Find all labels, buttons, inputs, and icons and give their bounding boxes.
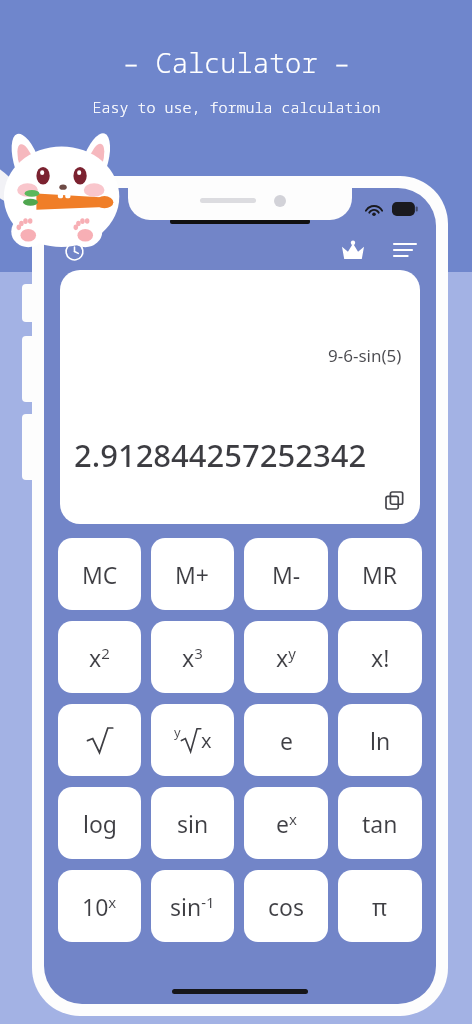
button[interactable]: MR <box>338 538 422 610</box>
button[interactable]: ln <box>338 704 422 776</box>
staticText: x3 <box>182 642 203 673</box>
button[interactable]: MC <box>58 538 141 610</box>
button[interactable]: Copy result <box>380 486 408 514</box>
button[interactable] <box>58 704 141 776</box>
staticText: π <box>372 891 388 922</box>
button[interactable]: History <box>58 234 90 266</box>
staticText: x <box>201 727 212 754</box>
staticText: 9-6-sin(5) <box>328 344 402 367</box>
button[interactable]: x! <box>338 621 422 693</box>
staticText: sin-1 <box>170 891 215 922</box>
button[interactable]: x3 <box>151 621 234 693</box>
button[interactable]: sin-1 <box>151 870 234 942</box>
button[interactable]: π <box>338 870 422 942</box>
staticText: log <box>83 808 117 839</box>
button[interactable]: M+ <box>151 538 234 610</box>
button[interactable]: x2 <box>58 621 141 693</box>
button[interactable]: Premium <box>336 233 370 267</box>
button[interactable]: log <box>58 787 141 859</box>
staticText: xy <box>276 642 296 673</box>
staticText: – Calculator – <box>123 44 350 81</box>
staticText: MR <box>362 559 398 590</box>
staticText: MC <box>82 559 118 590</box>
staticText: cos <box>268 891 304 922</box>
staticText: y <box>174 723 181 741</box>
button[interactable]: 9-6-sin(5) <box>60 270 420 524</box>
button[interactable]: Menu <box>388 233 422 267</box>
staticText: x2 <box>89 642 110 673</box>
staticText: tan <box>362 808 398 839</box>
button[interactable]: cos <box>244 870 328 942</box>
staticText: 10x <box>82 891 117 922</box>
staticText: ln <box>370 725 391 756</box>
button[interactable]: 10x <box>58 870 141 942</box>
staticText: M+ <box>175 559 210 590</box>
button[interactable]: ex <box>244 787 328 859</box>
button[interactable]: e <box>244 704 328 776</box>
button[interactable]: tan <box>338 787 422 859</box>
button[interactable]: xy <box>244 621 328 693</box>
staticText: e <box>280 725 293 756</box>
staticText: 2.912844257252342 <box>74 434 367 476</box>
staticText: x! <box>371 642 390 673</box>
button[interactable]: M- <box>244 538 328 610</box>
staticText: Easy to use, formula calculation <box>92 97 381 117</box>
staticText: ex <box>276 808 297 839</box>
staticText: sin <box>177 808 209 839</box>
staticText: M- <box>272 559 301 590</box>
button[interactable]: sin <box>151 787 234 859</box>
button[interactable]: y <box>151 704 234 776</box>
